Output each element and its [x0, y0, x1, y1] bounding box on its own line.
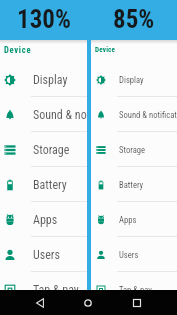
button[interactable]: Tap & pay	[0, 272, 87, 307]
staticText: Tap & pay	[33, 283, 79, 297]
staticText: Sound & notification	[119, 110, 177, 120]
button[interactable]: Tap & pay	[91, 272, 177, 307]
button[interactable]: Battery	[0, 167, 87, 202]
staticText: Display	[33, 73, 68, 87]
staticText: Storage	[33, 143, 70, 157]
staticText: Device	[95, 45, 116, 53]
staticText: Device	[4, 45, 32, 55]
button[interactable]: Storage	[0, 132, 87, 167]
staticText: Users	[119, 250, 139, 260]
button[interactable]: Users	[91, 237, 177, 272]
staticText: 130%	[17, 5, 71, 34]
staticText: Tap & pay	[119, 285, 152, 295]
staticText: Display	[119, 75, 144, 85]
button[interactable]: Battery	[91, 167, 177, 202]
staticText: Battery	[33, 178, 67, 192]
staticText: Apps	[33, 213, 58, 227]
button[interactable]: Sound & notification	[0, 97, 87, 132]
button[interactable]: Home	[71, 290, 105, 315]
staticText: Apps	[119, 215, 137, 225]
button[interactable]: Storage	[91, 132, 177, 167]
button[interactable]: Users	[0, 237, 87, 272]
staticText: Battery	[119, 180, 144, 190]
staticText: Users	[33, 248, 60, 262]
button[interactable]: Apps	[91, 202, 177, 237]
staticText: Sound & notification	[33, 108, 120, 122]
button[interactable]: Sound & notification	[91, 97, 177, 132]
button[interactable]: Display	[0, 62, 87, 97]
button[interactable]: Back	[23, 290, 57, 315]
button[interactable]: Apps	[0, 202, 87, 237]
button[interactable]: Recents	[120, 290, 154, 315]
button[interactable]: Display	[91, 62, 177, 97]
staticText: 85%	[113, 5, 155, 34]
staticText: Storage	[119, 145, 146, 155]
